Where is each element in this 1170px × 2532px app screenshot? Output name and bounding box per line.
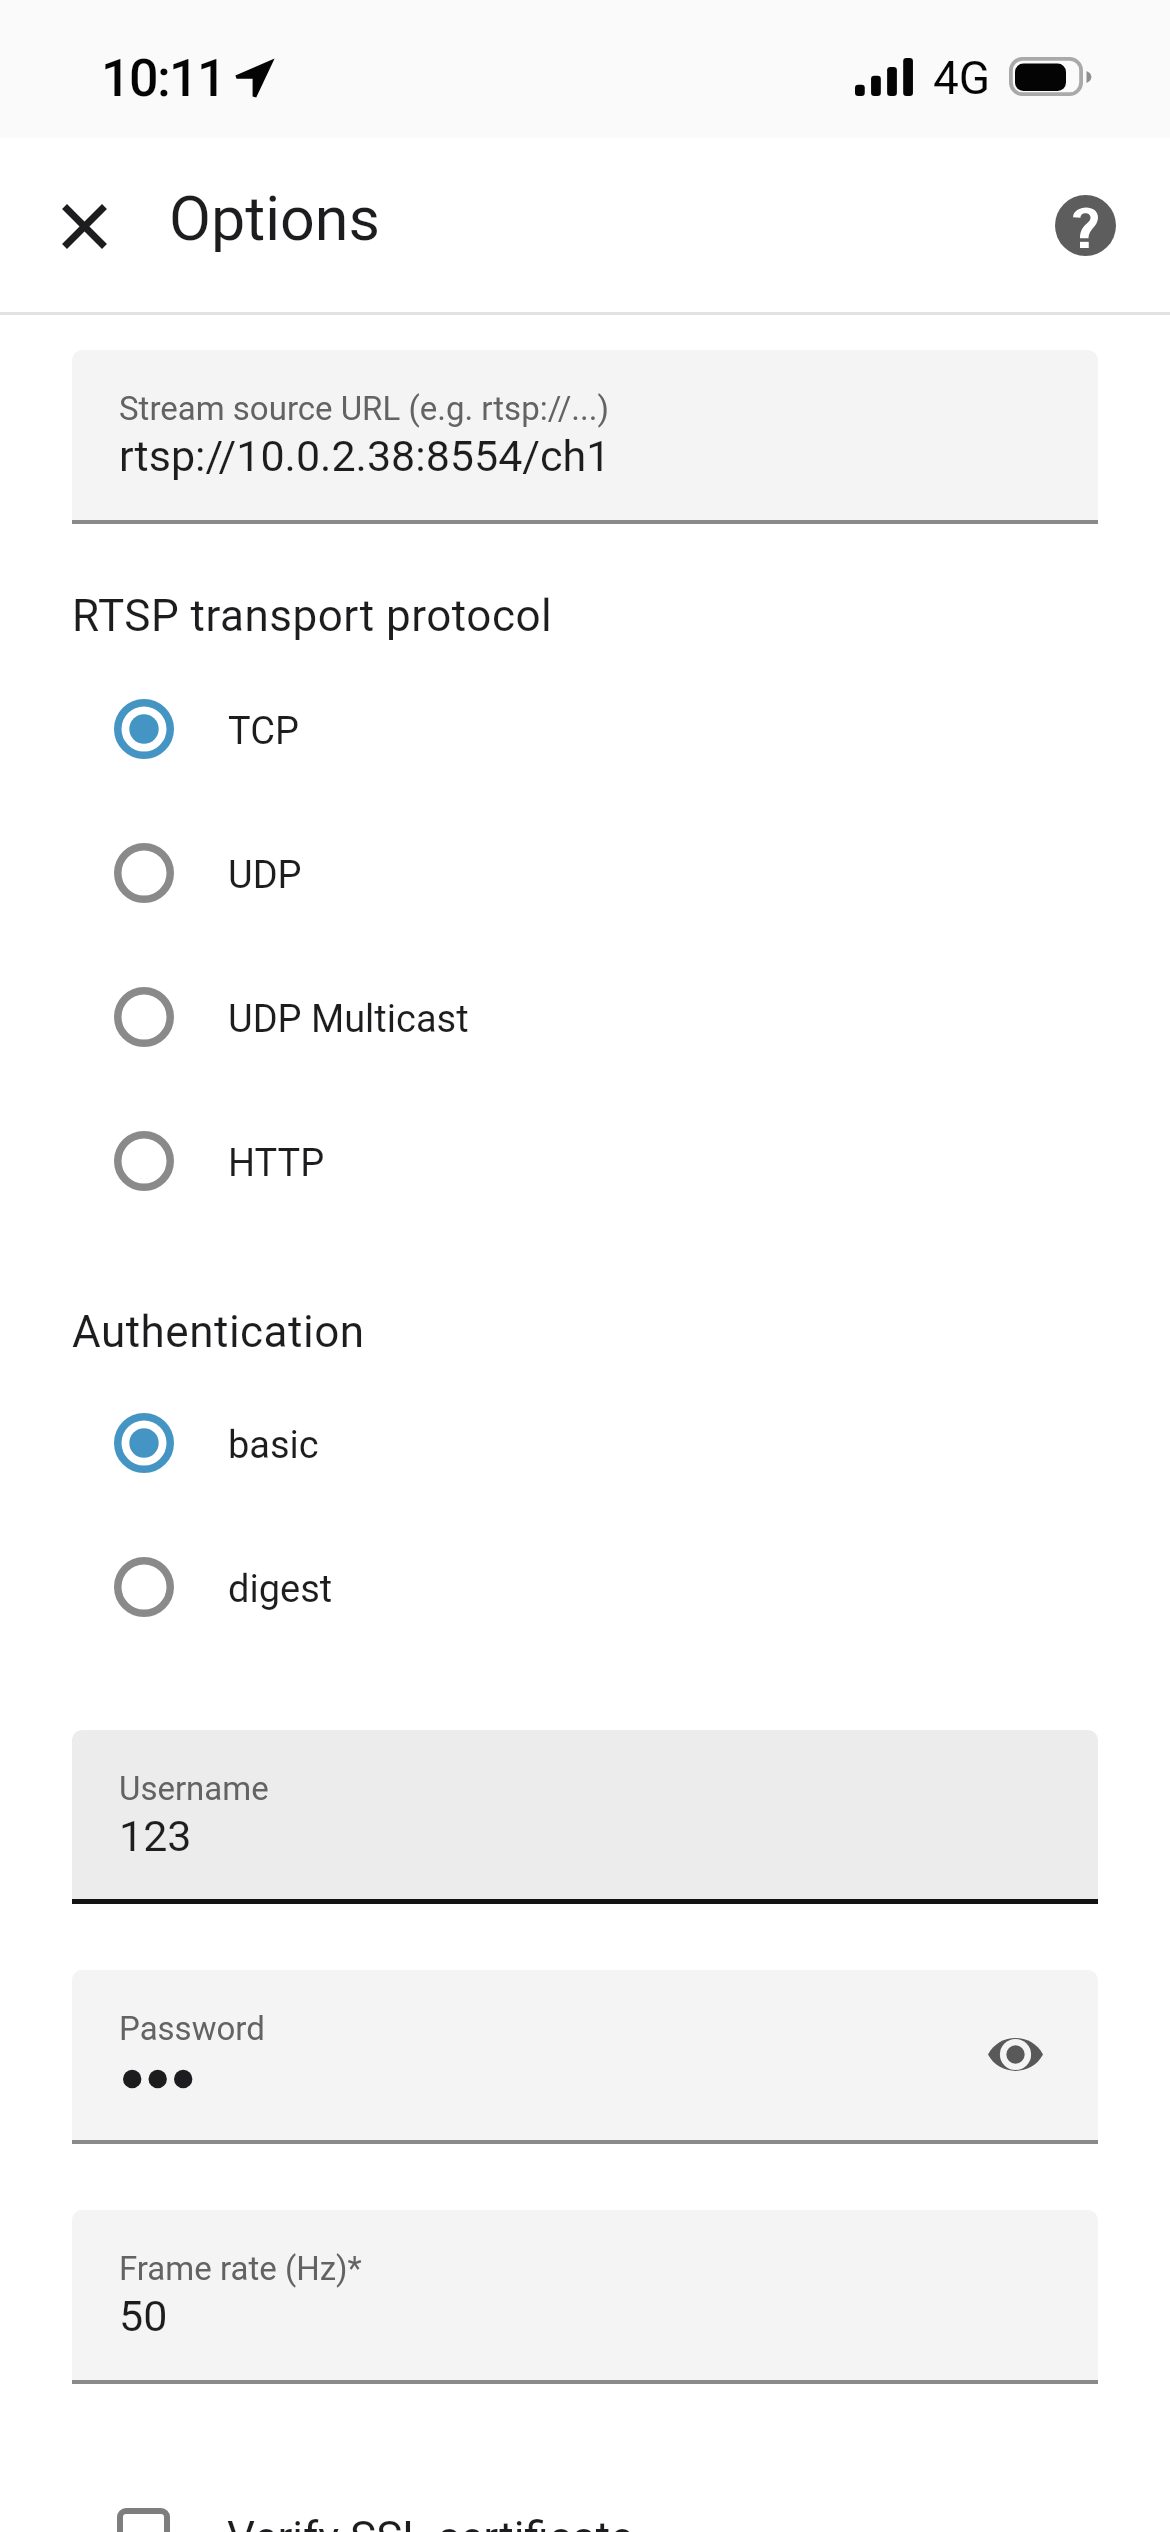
- staticText: Username: [119, 1769, 269, 1808]
- staticText: Options: [169, 183, 380, 254]
- staticText: UDP Multicast: [228, 997, 469, 1042]
- button[interactable]: HTTP: [0, 1089, 1170, 1233]
- staticText: TCP: [228, 709, 299, 754]
- button[interactable]: Username: [72, 1730, 1098, 1904]
- staticText: 123: [119, 1811, 192, 1861]
- button[interactable]: Stream source URL (e.g. rtsp://...): [72, 350, 1098, 524]
- button[interactable]: Password: [72, 1970, 1098, 2144]
- button[interactable]: TCP: [0, 657, 1170, 801]
- staticText: Verify SSL certificate: [227, 2512, 634, 2532]
- staticText: HTTP: [228, 1141, 325, 1186]
- staticText: 50: [119, 2291, 168, 2341]
- staticText: Password: [119, 2009, 265, 2048]
- staticText: Stream source URL (e.g. rtsp://...): [119, 389, 609, 428]
- button[interactable]: digest: [0, 1515, 1170, 1659]
- staticText: basic: [228, 1423, 319, 1468]
- button[interactable]: Verify SSL certificate: [0, 2482, 1170, 2532]
- button[interactable]: Help: [1055, 195, 1116, 256]
- staticText: rtsp://10.0.2.38:8554/ch1: [119, 431, 611, 481]
- button[interactable]: Show password: [977, 2016, 1053, 2092]
- button[interactable]: Frame rate (Hz)*: [72, 2210, 1098, 2384]
- staticText: Authentication: [72, 1306, 365, 1358]
- staticText: Frame rate (Hz)*: [119, 2249, 362, 2288]
- button[interactable]: Close: [42, 183, 126, 267]
- staticText: 4G: [933, 51, 991, 105]
- staticText: UDP: [228, 853, 302, 898]
- button[interactable]: UDP Multicast: [0, 945, 1170, 1089]
- button[interactable]: basic: [0, 1371, 1170, 1515]
- staticText: RTSP transport protocol: [72, 590, 553, 642]
- staticText: digest: [228, 1567, 333, 1612]
- button[interactable]: UDP: [0, 801, 1170, 945]
- staticText: 10:11: [101, 48, 226, 109]
